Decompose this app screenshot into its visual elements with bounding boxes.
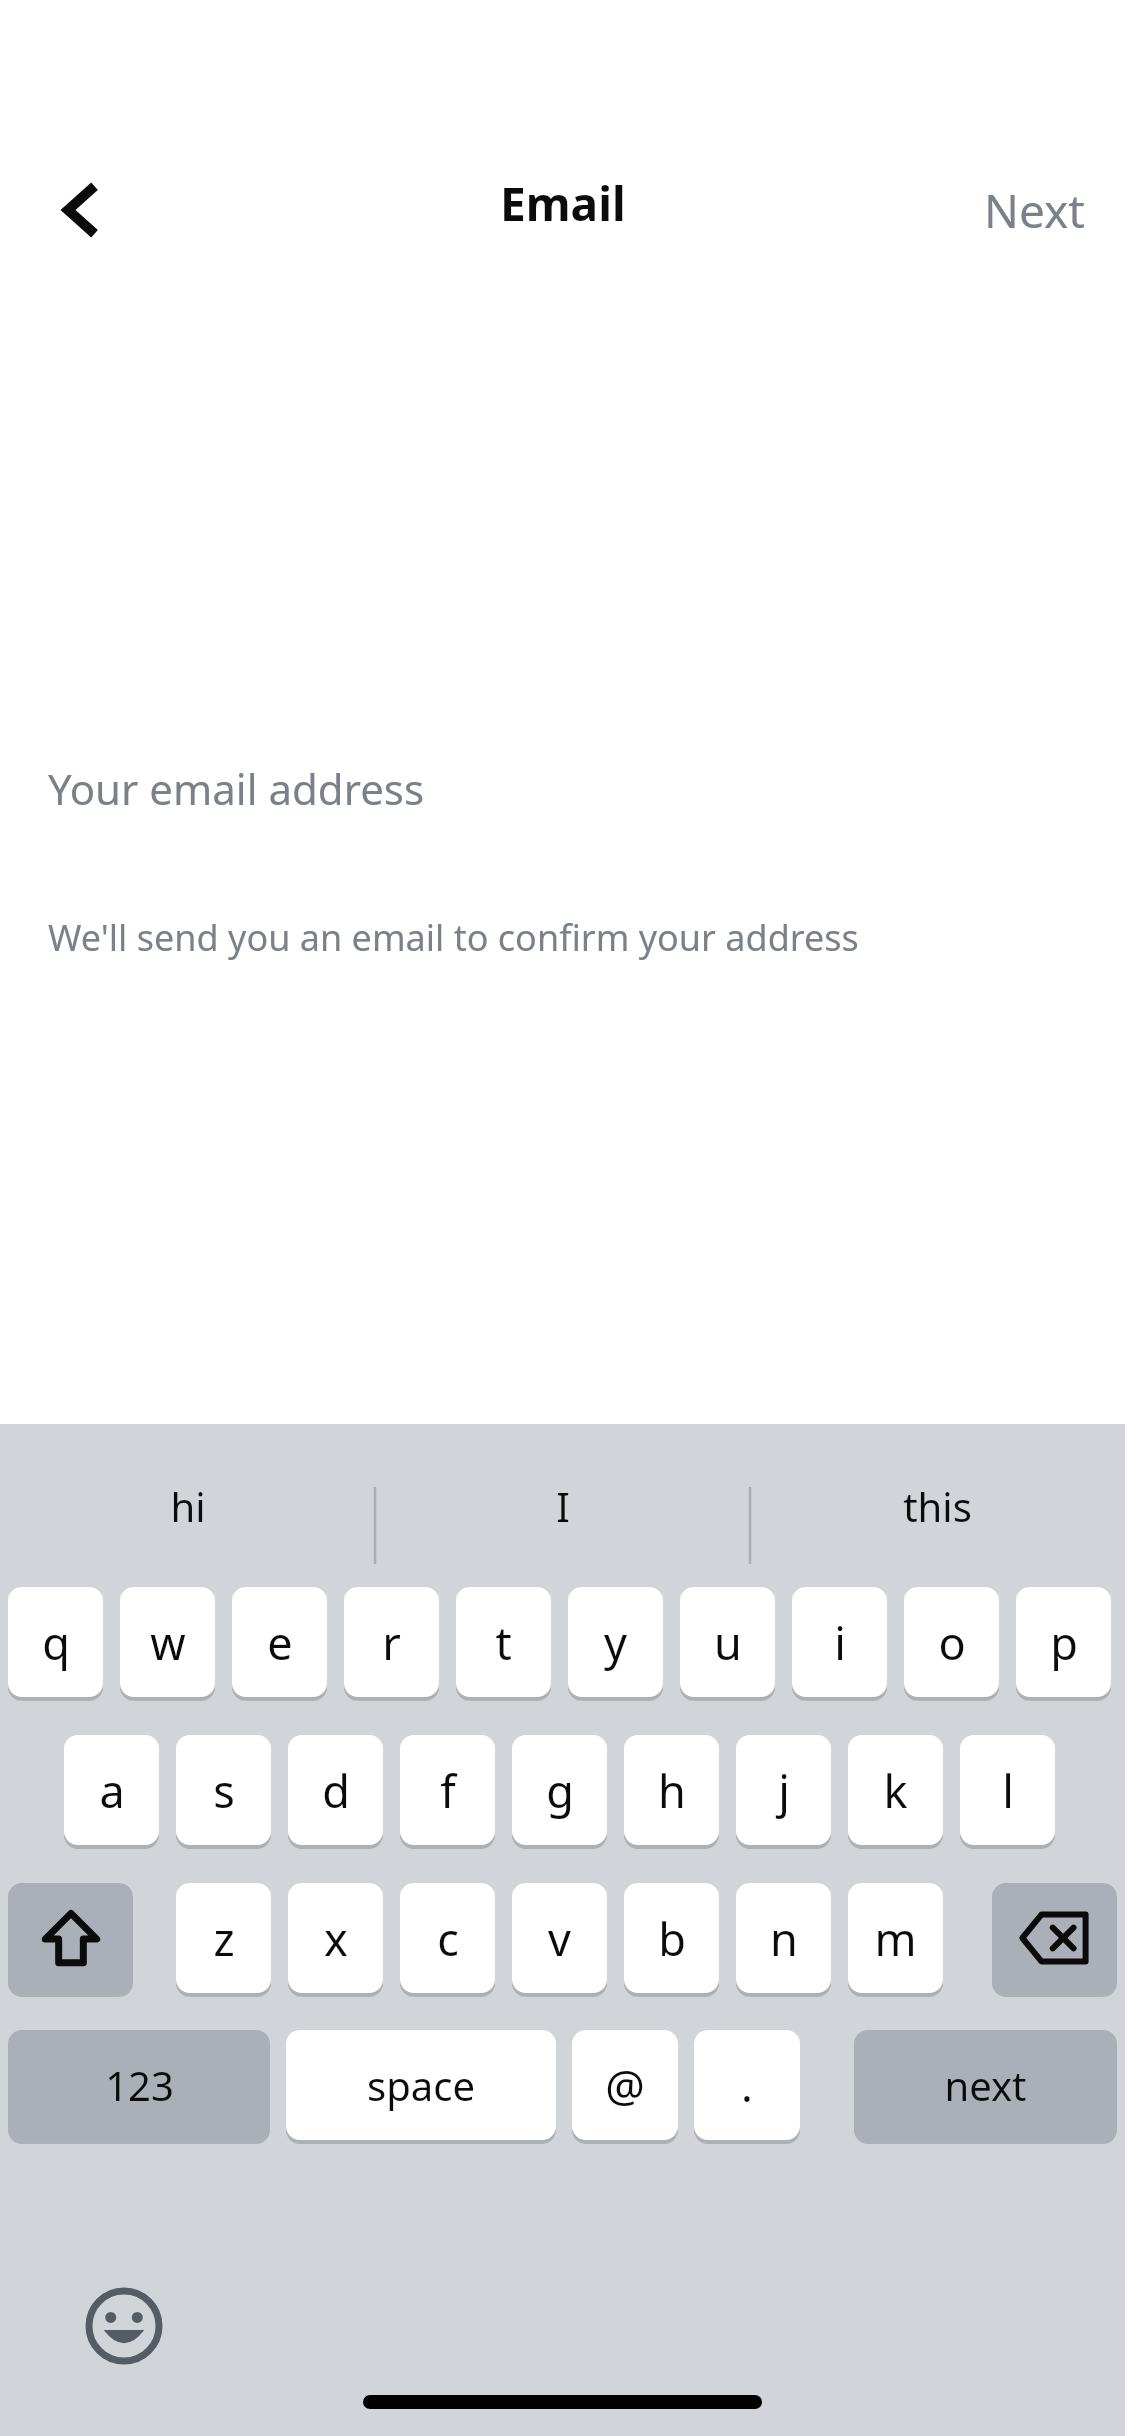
- button[interactable]: I: [375, 1424, 750, 1587]
- button[interactable]: @: [572, 2030, 678, 2140]
- button[interactable]: m: [848, 1883, 943, 1993]
- staticText: c: [437, 1908, 459, 1969]
- button[interactable]: space: [286, 2030, 556, 2140]
- button[interactable]: v: [512, 1883, 607, 1993]
- button[interactable]: x: [288, 1883, 383, 1993]
- staticText: b: [658, 1908, 686, 1969]
- button[interactable]: .: [694, 2030, 800, 2140]
- button[interactable]: p: [1016, 1587, 1111, 1697]
- button[interactable]: w: [120, 1587, 215, 1697]
- button[interactable]: u: [680, 1587, 775, 1697]
- button[interactable]: f: [400, 1735, 495, 1845]
- staticText: n: [770, 1908, 798, 1969]
- staticText: u: [714, 1612, 742, 1673]
- staticText: Email: [500, 172, 626, 235]
- button[interactable]: s: [176, 1735, 271, 1845]
- button[interactable]: o: [904, 1587, 999, 1697]
- button[interactable]: e: [232, 1587, 327, 1697]
- staticText: x: [324, 1908, 348, 1969]
- staticText: 123: [105, 2058, 174, 2112]
- staticText: this: [903, 1479, 972, 1533]
- button[interactable]: next: [854, 2030, 1117, 2140]
- staticText: y: [604, 1612, 627, 1673]
- staticText: h: [658, 1760, 686, 1821]
- staticText: f: [440, 1760, 456, 1821]
- staticText: k: [883, 1760, 908, 1821]
- staticText: Your email address: [48, 760, 425, 817]
- button[interactable]: Emoji: [68, 2270, 180, 2382]
- button[interactable]: a: [64, 1735, 159, 1845]
- button[interactable]: this: [750, 1424, 1125, 1587]
- staticText: e: [267, 1612, 293, 1673]
- button[interactable]: q: [8, 1587, 103, 1697]
- button[interactable]: d: [288, 1735, 383, 1845]
- button[interactable]: n: [736, 1883, 831, 1993]
- staticText: v: [548, 1908, 571, 1969]
- staticText: I: [556, 1479, 570, 1533]
- staticText: .: [741, 2055, 753, 2115]
- button[interactable]: Backspace: [992, 1883, 1117, 1993]
- staticText: o: [938, 1612, 966, 1673]
- button[interactable]: h: [624, 1735, 719, 1845]
- button[interactable]: r: [344, 1587, 439, 1697]
- staticText: z: [213, 1908, 235, 1969]
- button[interactable]: Shift: [8, 1883, 133, 1993]
- staticText: m: [874, 1908, 917, 1969]
- staticText: Next: [984, 179, 1085, 242]
- button[interactable]: k: [848, 1735, 943, 1845]
- button[interactable]: z: [176, 1883, 271, 1993]
- button[interactable]: t: [456, 1587, 551, 1697]
- staticText: l: [1002, 1760, 1014, 1821]
- button[interactable]: hi: [0, 1424, 375, 1587]
- button[interactable]: 123: [8, 2030, 270, 2140]
- staticText: We'll send you an email to confirm your …: [48, 913, 859, 962]
- button[interactable]: b: [624, 1883, 719, 1993]
- button[interactable]: l: [960, 1735, 1055, 1845]
- button[interactable]: i: [792, 1587, 887, 1697]
- staticText: t: [495, 1612, 512, 1673]
- button[interactable]: Your email address: [0, 745, 1125, 831]
- staticText: r: [382, 1612, 401, 1673]
- staticText: s: [213, 1760, 235, 1821]
- staticText: g: [546, 1760, 574, 1821]
- staticText: p: [1050, 1612, 1078, 1673]
- staticText: q: [42, 1612, 70, 1673]
- staticText: space: [367, 2058, 475, 2112]
- staticText: j: [778, 1760, 790, 1821]
- staticText: next: [944, 2058, 1027, 2112]
- button[interactable]: y: [568, 1587, 663, 1697]
- staticText: hi: [170, 1479, 206, 1533]
- staticText: i: [834, 1612, 846, 1673]
- staticText: a: [99, 1760, 125, 1821]
- button[interactable]: c: [400, 1883, 495, 1993]
- button[interactable]: j: [736, 1735, 831, 1845]
- staticText: @: [605, 2055, 645, 2115]
- staticText: w: [150, 1612, 186, 1673]
- button[interactable]: g: [512, 1735, 607, 1845]
- staticText: d: [322, 1760, 350, 1821]
- button[interactable]: Back: [30, 160, 130, 260]
- button[interactable]: Next: [954, 160, 1115, 260]
